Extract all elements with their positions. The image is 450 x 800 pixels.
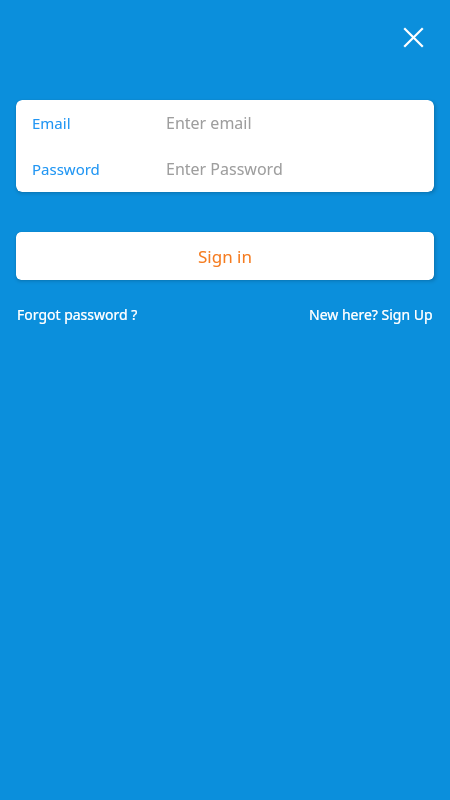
- staticText: Email: [32, 113, 166, 133]
- staticText: Enter email: [166, 112, 252, 134]
- staticText: Enter Password: [166, 158, 283, 180]
- staticText: Sign in: [198, 245, 252, 268]
- button[interactable]: Close: [389, 13, 437, 61]
- button[interactable]: New here? Sign Up: [309, 305, 433, 324]
- button[interactable]: Forgot password ?: [17, 305, 138, 324]
- staticText: New here? Sign Up: [309, 305, 433, 324]
- button[interactable]: Email: [16, 100, 434, 146]
- button[interactable]: Sign in: [16, 232, 434, 280]
- staticText: Password: [32, 159, 166, 179]
- button[interactable]: Password: [16, 146, 434, 192]
- staticText: Forgot password ?: [17, 305, 138, 324]
